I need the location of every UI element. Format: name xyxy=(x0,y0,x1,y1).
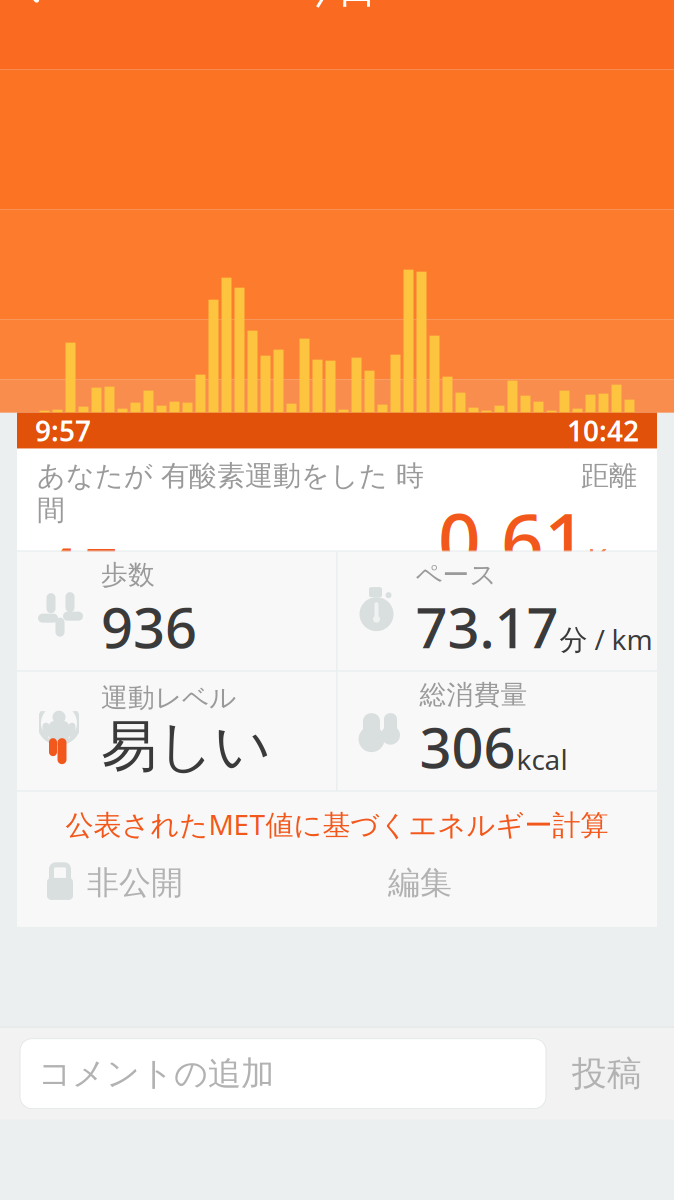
staticText: kcal xyxy=(516,740,567,778)
staticText: コメントの追加 xyxy=(38,1053,274,1094)
staticText: 今日 xyxy=(297,0,377,13)
button[interactable]: 非公開 xyxy=(17,857,183,909)
staticText: 総消費量 xyxy=(419,679,527,711)
staticText: 運動レベル xyxy=(101,681,236,714)
staticText: 易しい xyxy=(101,712,271,781)
staticText: 公表されたMET値に基づくエネルギー計算 xyxy=(65,806,608,843)
staticText: 編集 xyxy=(388,863,452,902)
staticText: 10:42 xyxy=(567,412,639,449)
button[interactable]: 投稿 xyxy=(546,1039,668,1109)
button[interactable]: 公表されたMET値に基づくエネルギー計算 xyxy=(17,792,657,857)
staticText: 投稿 xyxy=(572,1052,642,1095)
staticText: ペース xyxy=(415,559,496,591)
button[interactable]: コメントの追加 xyxy=(20,1039,546,1109)
staticText: 306 xyxy=(419,709,515,784)
button[interactable]: 編集 xyxy=(388,857,452,908)
staticText: 0.61 xyxy=(438,489,587,588)
staticText: 分 xyxy=(123,577,155,617)
staticText: 非公開 xyxy=(87,863,183,902)
staticText: 距離 xyxy=(581,459,637,493)
staticText: 73.17 xyxy=(415,589,558,664)
staticText: 分 / km xyxy=(559,620,652,658)
staticText: 45 xyxy=(37,523,123,623)
staticText: Km xyxy=(587,540,637,582)
button[interactable]: 戻る xyxy=(0,0,54,14)
staticText: 歩数 xyxy=(101,559,155,591)
staticText: 936 xyxy=(101,589,197,664)
staticText: 9:57 xyxy=(35,412,91,449)
staticText: あなたが 有酸素運動をした 時間 xyxy=(37,459,424,527)
